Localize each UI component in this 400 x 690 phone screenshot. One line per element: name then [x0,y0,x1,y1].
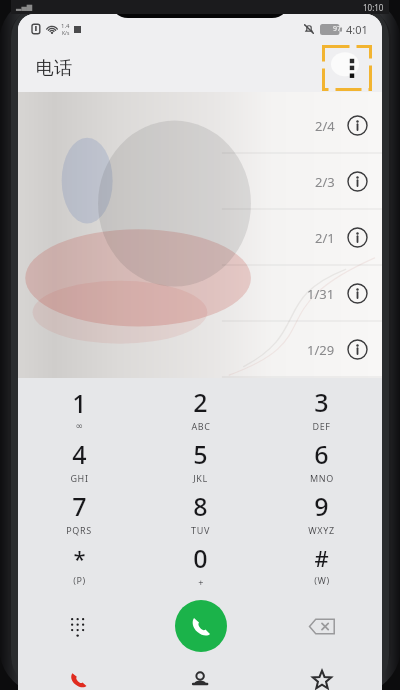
button[interactable]: 1 [18,382,140,434]
staticText: ▂▄▆ [16,3,33,11]
staticText: 4:01 [346,22,368,37]
staticText: MNO [310,472,334,484]
staticText: + [198,576,204,588]
staticText: 10:10 [363,2,384,13]
button[interactable]: 1/29 [18,322,382,377]
button[interactable]: Call details [347,283,368,304]
staticText: * [73,543,86,573]
staticText: PQRS [66,524,92,536]
staticText: GHI [70,472,89,484]
staticText: 2/4 [315,117,335,135]
staticText: 1.4 [61,22,70,30]
button[interactable]: Call details [347,227,368,248]
staticText: (W) [314,574,330,586]
button[interactable]: 6 [261,434,382,486]
staticText: 1 [72,386,87,420]
button[interactable]: 2/1 [18,210,382,265]
staticText: 2/3 [315,173,335,191]
button[interactable]: Favourites tab [261,662,382,690]
staticText: 3 [314,385,329,419]
button[interactable]: 7 [18,486,140,538]
button[interactable]: Dialpad tab [18,662,140,690]
staticText: 电话 [36,57,72,80]
button[interactable]: 0 [140,538,261,590]
staticText: 4 [72,437,87,471]
button[interactable]: Hide keypad [62,609,96,643]
staticText: WXYZ [308,524,335,536]
button[interactable]: # [261,538,382,590]
button[interactable]: Call [175,600,227,652]
staticText: 8 [193,489,208,523]
staticText: DEF [312,420,331,432]
staticText: 97 [333,24,342,34]
button[interactable]: Contacts tab [140,662,261,690]
button[interactable]: 9 [261,486,382,538]
button[interactable]: 2/4 [18,98,382,153]
staticText: 1/31 [307,285,335,303]
staticText: # [314,543,329,573]
button[interactable]: 8 [140,486,261,538]
button[interactable]: 3 [261,382,382,434]
staticText: TUV [191,524,210,536]
button[interactable]: Call details [347,339,368,360]
button[interactable]: 4 [18,434,140,486]
button[interactable]: 2/3 [18,154,382,209]
staticText: 2/1 [315,229,335,247]
staticText: 2 [193,385,208,419]
button[interactable]: More options [322,45,372,91]
staticText: (P) [73,574,86,586]
staticText: 1/29 [307,341,335,359]
button[interactable]: 2 [140,382,261,434]
button[interactable]: Call details [347,115,368,136]
staticText: K/s [62,30,70,37]
button[interactable]: Call details [347,171,368,192]
staticText: ABC [191,420,211,432]
button[interactable]: Backspace [303,607,341,645]
staticText: JKL [193,472,208,484]
button[interactable]: * [18,538,140,590]
staticText: 6 [314,437,329,471]
staticText: 7 [72,489,87,523]
button[interactable]: 1/31 [18,266,382,321]
button[interactable]: 5 [140,434,261,486]
staticText: 0 [193,541,208,575]
staticText: 5 [193,437,208,471]
staticText: ∞ [75,421,84,431]
staticText: 9 [314,489,329,523]
